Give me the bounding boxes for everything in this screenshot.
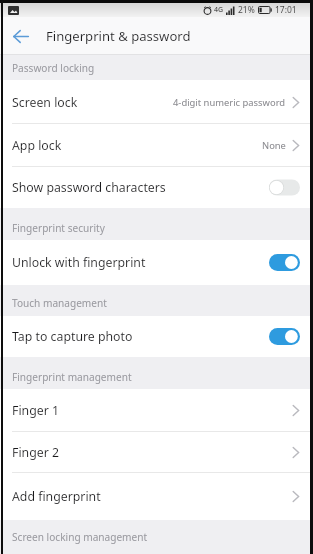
staticText: App lock (12, 137, 62, 154)
staticText: Screen lock (12, 94, 78, 111)
staticText: Fingerprint security (12, 221, 105, 235)
staticText: None (262, 139, 286, 152)
staticText: Password locking (12, 61, 95, 75)
staticText: Fingerprint management (12, 370, 132, 384)
button[interactable]: Finger 1 (0, 389, 313, 432)
button[interactable]: App lock (0, 124, 313, 167)
button[interactable]: Add fingerprint (0, 473, 313, 520)
button[interactable]: Show password characters (0, 167, 313, 208)
staticText: Tap to capture photo (12, 328, 133, 345)
staticText: 4G (214, 5, 224, 15)
staticText: Touch management (12, 296, 107, 310)
button[interactable]: Tap to capture photo (0, 316, 313, 357)
staticText: 21% (238, 4, 255, 16)
staticText: Fingerprint & password (46, 27, 191, 45)
staticText: Screen locking management (12, 530, 148, 544)
button[interactable]: Unlock with fingerprint (0, 240, 313, 285)
staticText: Unlock with fingerprint (12, 254, 146, 271)
button[interactable]: Screen lock (0, 80, 313, 124)
staticText: Show password characters (12, 179, 166, 196)
staticText: Finger 1 (12, 402, 59, 419)
button[interactable] (13, 30, 29, 43)
staticText: 17:01 (275, 4, 297, 16)
staticText: Finger 2 (12, 444, 59, 461)
staticText: Add fingerprint (12, 488, 101, 505)
staticText: 4-digit numeric password (173, 96, 286, 109)
button[interactable]: Finger 2 (0, 432, 313, 473)
